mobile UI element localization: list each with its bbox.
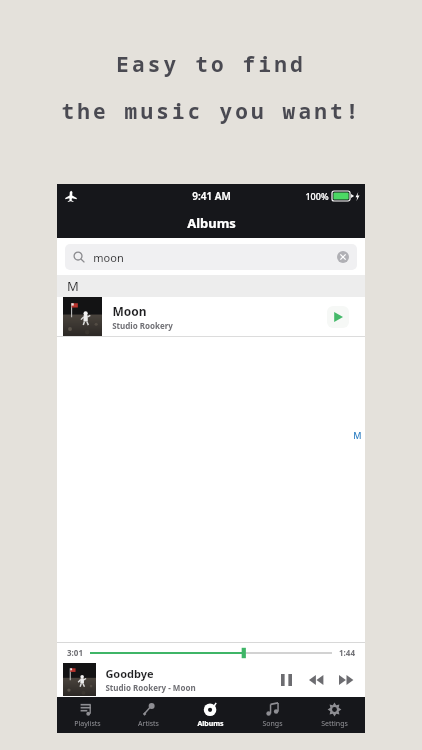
button[interactable]: moon bbox=[65, 244, 357, 270]
staticText: Settings bbox=[321, 719, 348, 729]
staticText: Goodbye bbox=[105, 666, 154, 681]
staticText: 3:01 bbox=[67, 647, 83, 658]
staticText: Studio Rookery bbox=[112, 320, 173, 331]
staticText: Moon bbox=[112, 303, 147, 319]
button[interactable]: Albums bbox=[179, 697, 241, 733]
staticText: Albums bbox=[197, 719, 224, 729]
staticText: M bbox=[67, 277, 79, 295]
button[interactable]: Playlists bbox=[57, 697, 118, 733]
staticText: M bbox=[353, 429, 362, 441]
button[interactable]: Pause bbox=[275, 669, 297, 691]
button[interactable]: Goodbye bbox=[57, 662, 365, 697]
staticText: moon bbox=[93, 250, 124, 265]
button[interactable]: Songs bbox=[241, 697, 303, 733]
staticText: Studio Rookery - Moon bbox=[105, 682, 196, 693]
button[interactable]: Settings bbox=[303, 697, 365, 733]
staticText: 1:44 bbox=[339, 647, 355, 658]
staticText: the music you want! bbox=[61, 97, 362, 126]
staticText: Albums bbox=[187, 214, 236, 232]
button[interactable]: Play Moon bbox=[327, 306, 349, 328]
staticText: Easy to find bbox=[116, 50, 306, 79]
button[interactable]: Fast forward bbox=[335, 669, 357, 691]
staticText: Artists bbox=[138, 719, 159, 729]
staticText: Songs bbox=[262, 719, 283, 729]
button[interactable]: Rewind bbox=[305, 669, 327, 691]
staticText: Playlists bbox=[74, 719, 101, 729]
staticText: 9:41 AM bbox=[192, 189, 231, 203]
staticText: 100% bbox=[305, 190, 329, 202]
button[interactable]: Clear search bbox=[337, 251, 349, 263]
button[interactable]: Artists bbox=[118, 697, 179, 733]
button[interactable]: Moon bbox=[57, 297, 365, 336]
